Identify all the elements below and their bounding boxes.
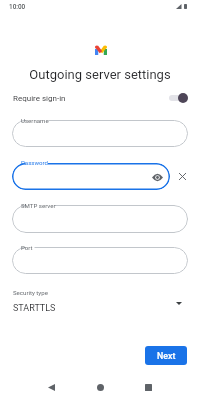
- button[interactable]: Next: [145, 346, 187, 365]
- staticText: Username: [21, 117, 49, 124]
- staticText: Security type: [13, 289, 48, 296]
- button[interactable]: Require sign-in: [0, 88, 200, 108]
- staticText: Port: [21, 244, 33, 251]
- button[interactable]: Show password: [12, 163, 170, 190]
- button[interactable]: Recent apps: [137, 376, 159, 398]
- button[interactable]: Home: [89, 376, 111, 398]
- staticText: 10:00: [9, 3, 26, 11]
- staticText: Outgoing server settings: [0, 67, 200, 82]
- button[interactable]: [12, 205, 188, 233]
- button[interactable]: [12, 247, 188, 274]
- staticText: SMTP server: [21, 202, 56, 209]
- button[interactable]: Show password: [150, 170, 164, 184]
- staticText: Next: [157, 351, 176, 361]
- staticText: Password: [21, 159, 48, 166]
- button[interactable]: Clear password: [175, 169, 189, 183]
- staticText: STARTTLS: [13, 303, 56, 314]
- button[interactable]: Back: [40, 376, 62, 398]
- button[interactable]: Security type: [0, 286, 200, 316]
- staticText: Require sign-in: [13, 94, 66, 103]
- button[interactable]: [12, 120, 188, 147]
